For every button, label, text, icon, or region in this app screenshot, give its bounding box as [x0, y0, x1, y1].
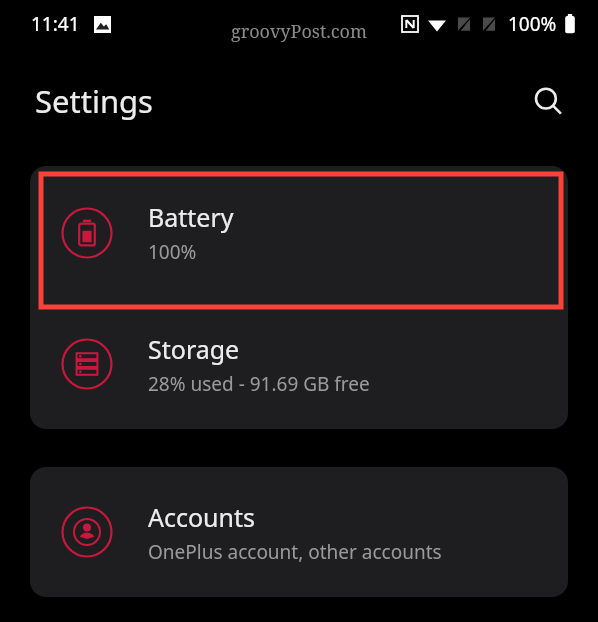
staticText: 100% — [148, 239, 197, 265]
staticText: Storage — [148, 332, 240, 366]
button[interactable]: Battery — [30, 166, 568, 299]
staticText: OnePlus account, other accounts — [148, 539, 442, 565]
staticText: Settings — [35, 80, 153, 122]
staticText: Accounts — [148, 500, 256, 534]
staticText: groovyPost.com — [0, 19, 598, 44]
staticText: Battery — [148, 200, 234, 234]
staticText: 28% used - 91.69 GB free — [148, 371, 370, 397]
button[interactable]: Storage — [30, 299, 568, 429]
button[interactable]: Accounts — [30, 467, 568, 597]
staticText: 100% — [508, 11, 557, 37]
button[interactable]: Search — [526, 79, 570, 123]
staticText: 11:41 — [31, 11, 80, 37]
